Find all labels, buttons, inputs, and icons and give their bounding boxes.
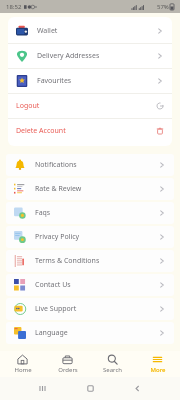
staticText: Terms & Conditions xyxy=(35,256,100,266)
staticText: Favourites xyxy=(37,76,72,86)
staticText: More xyxy=(150,366,166,374)
button[interactable]: Privacy Policy xyxy=(6,226,174,248)
button[interactable]: More xyxy=(135,351,180,377)
button[interactable]: Orders xyxy=(45,351,90,377)
button[interactable]: Delete Account xyxy=(8,119,172,143)
button[interactable]: Wallet xyxy=(8,19,172,44)
button[interactable]: Rate & Review xyxy=(6,178,174,200)
staticText: 18:52 xyxy=(6,3,22,11)
button[interactable]: Delivery Addresses xyxy=(8,44,172,69)
staticText: Delivery Addresses xyxy=(37,51,100,61)
button[interactable]: Favourites xyxy=(8,69,172,94)
staticText: Wallet xyxy=(37,26,58,36)
staticText: Rate & Review xyxy=(35,184,82,194)
staticText: Language xyxy=(35,328,68,338)
staticText: Notifications xyxy=(35,160,77,170)
staticText: Delete Account xyxy=(16,126,66,136)
button[interactable]: Contact Us xyxy=(6,274,174,296)
staticText: Contact Us xyxy=(35,280,71,290)
staticText: Logout xyxy=(16,101,40,111)
staticText: Live Support xyxy=(35,304,77,314)
staticText: Orders xyxy=(58,366,78,374)
button[interactable]: Logout xyxy=(8,94,172,119)
button[interactable]: Search xyxy=(90,351,135,377)
button[interactable]: Notifications xyxy=(6,154,174,176)
button[interactable]: Live Support xyxy=(6,298,174,320)
staticText: Home xyxy=(14,366,32,374)
staticText: 57% xyxy=(157,3,169,11)
button[interactable]: Terms & Conditions xyxy=(6,250,174,272)
staticText: Privacy Policy xyxy=(35,232,80,242)
button[interactable]: Home xyxy=(0,351,45,377)
button[interactable]: Language xyxy=(6,322,174,344)
staticText: Faqs xyxy=(35,208,51,218)
staticText: Search xyxy=(103,366,122,374)
button[interactable]: Faqs xyxy=(6,202,174,224)
